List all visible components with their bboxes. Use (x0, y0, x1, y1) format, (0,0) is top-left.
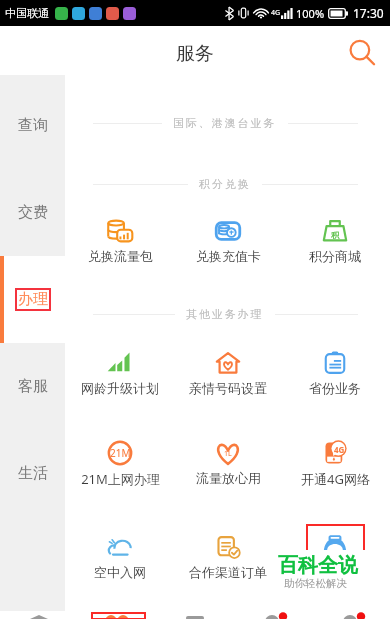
staticText: 兑换充值卡 (196, 248, 261, 264)
button[interactable]: 查询 (0, 82, 65, 169)
button[interactable]: 合作渠道订单 (176, 534, 280, 580)
staticText: 4G (271, 8, 281, 18)
button[interactable]: 宽带业务 (283, 534, 387, 580)
button[interactable]: Search (346, 37, 379, 70)
button[interactable]: 交费 (0, 169, 65, 256)
staticText: 开通4G网络 (301, 470, 370, 488)
staticText: 积分商城 (309, 248, 361, 264)
staticText: 积 (331, 230, 339, 240)
staticText: 流量放心用 (196, 470, 261, 486)
staticText: 21M上网办理 (81, 470, 160, 488)
staticText: 服务 (176, 42, 214, 66)
button[interactable]: Tab 1 (0, 611, 78, 619)
staticText: 亲情号码设置 (189, 380, 267, 396)
button[interactable]: 省份业务 (283, 350, 387, 396)
staticText: 100% (296, 6, 325, 21)
staticText: 1L (224, 449, 232, 459)
staticText: 交费 (18, 203, 48, 222)
button[interactable]: 空中入网 (68, 534, 172, 580)
button[interactable]: 生活 (0, 430, 65, 517)
staticText: 办理 (18, 290, 48, 309)
staticText: 兑换流量包 (88, 248, 153, 264)
staticText: 4G (334, 444, 345, 455)
button[interactable]: Tab 3 (156, 611, 234, 619)
staticText: 其他业务办理 (186, 307, 264, 321)
staticText: 省份业务 (309, 380, 361, 396)
button[interactable]: 积 (283, 218, 387, 264)
staticText: 宽带业务 (309, 564, 361, 580)
staticText: 国际、港澳台业务 (173, 116, 277, 130)
button[interactable]: 4G (283, 440, 387, 488)
button[interactable]: 办理 (0, 256, 65, 343)
staticText: 生活 (18, 464, 48, 483)
button[interactable]: Tab 4 (234, 611, 312, 619)
button[interactable]: Tab 2 (78, 611, 156, 619)
staticText: 积分兑换 (199, 177, 251, 191)
button[interactable]: 兑换充值卡 (176, 218, 280, 264)
button[interactable]: 客服 (0, 343, 65, 430)
button[interactable]: 21M (68, 440, 172, 488)
staticText: 网龄升级计划 (81, 380, 159, 396)
button[interactable]: 亲情号码设置 (176, 350, 280, 396)
staticText: 查询 (18, 116, 48, 135)
staticText: 中国联通 (5, 6, 49, 20)
button[interactable]: Tab 5 (312, 611, 390, 619)
staticText: 百科全说 (278, 553, 358, 578)
staticText: 合作渠道订单 (189, 564, 267, 580)
staticText: 客服 (18, 377, 48, 396)
staticText: 17:30 (353, 5, 384, 21)
staticText: 助你轻松解决 (284, 577, 347, 590)
button[interactable]: 1L (176, 440, 280, 486)
staticText: 21M (110, 446, 131, 460)
staticText: 空中入网 (94, 564, 146, 580)
button[interactable]: 网龄升级计划 (68, 350, 172, 396)
button[interactable]: 兑换流量包 (68, 218, 172, 264)
